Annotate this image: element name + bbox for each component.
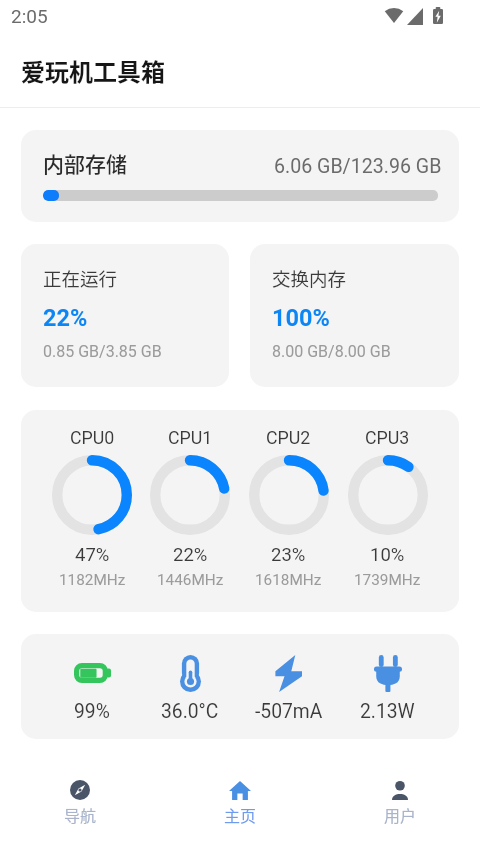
- button[interactable]: 导航: [0, 752, 160, 854]
- other: 用户: [390, 781, 410, 800]
- staticText: 主页: [224, 803, 257, 826]
- staticText: 1618MHz: [255, 571, 322, 589]
- staticText: CPU0: [70, 427, 115, 448]
- staticText: 交换内存: [272, 265, 347, 292]
- staticText: 导航: [64, 803, 97, 826]
- button[interactable]: 内部存储: [21, 130, 459, 222]
- staticText: 用户: [384, 803, 417, 826]
- button[interactable]: 交换内存: [250, 244, 459, 387]
- staticText: 6.06 GB/123.96 GB: [274, 155, 442, 178]
- staticText: 0.85 GB/3.85 GB: [43, 342, 162, 361]
- staticText: CPU2: [266, 427, 311, 448]
- button[interactable]: CPU0: [21, 410, 459, 612]
- staticText: 100%: [272, 304, 330, 332]
- staticText: 2:05: [11, 5, 48, 27]
- staticText: 1182MHz: [59, 571, 126, 589]
- staticText: CPU3: [365, 427, 410, 448]
- button[interactable]: 主页: [160, 752, 320, 854]
- staticText: -507mA: [255, 700, 323, 723]
- button[interactable]: 用户: [320, 752, 480, 854]
- other: Signal: [407, 8, 423, 25]
- other: 导航: [70, 780, 90, 800]
- button[interactable]: 正在运行: [21, 244, 229, 387]
- staticText: 47%: [75, 544, 110, 566]
- staticText: 22%: [173, 544, 208, 566]
- staticText: 23%: [271, 544, 306, 566]
- staticText: 1446MHz: [157, 571, 224, 589]
- staticText: 10%: [370, 544, 405, 566]
- staticText: 正在运行: [43, 265, 118, 292]
- staticText: 99%: [74, 700, 110, 723]
- staticText: 2.13W: [360, 700, 415, 723]
- staticText: 爱玩机工具箱: [21, 53, 165, 88]
- other: Battery: [433, 7, 443, 24]
- staticText: CPU1: [168, 427, 213, 448]
- staticText: 36.0°C: [161, 700, 219, 723]
- other: 主页: [229, 781, 251, 800]
- staticText: 8.00 GB/8.00 GB: [272, 342, 391, 361]
- button[interactable]: 99%: [21, 634, 459, 739]
- staticText: 内部存储: [43, 148, 127, 178]
- staticText: 22%: [43, 304, 88, 332]
- staticText: 1739MHz: [354, 571, 421, 589]
- other: Wi-Fi: [379, 8, 410, 23]
